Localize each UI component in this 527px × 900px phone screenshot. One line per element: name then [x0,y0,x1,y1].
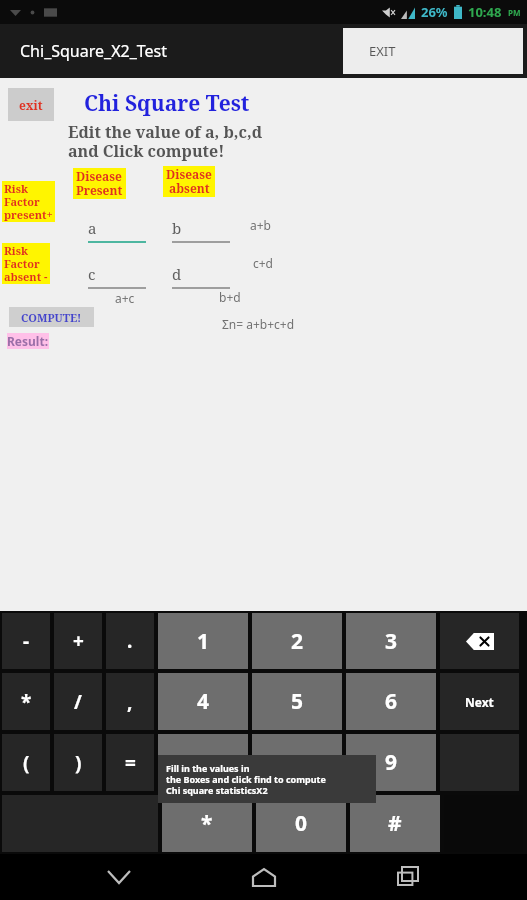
staticText: Risk Factor absent - [4,243,48,284]
staticText: Chi Square Test [84,89,250,118]
button[interactable]: 1 [158,613,248,669]
staticText: 2 [291,627,304,656]
staticText: 10:48 [468,3,502,21]
staticText: Fill in the values in the Boxes and clic… [166,762,326,796]
staticText: Disease Present [76,168,123,199]
button[interactable]: 5 [252,673,342,730]
staticText: Next [465,694,494,710]
button[interactable]: * [162,795,252,852]
button[interactable]: Next [440,673,519,730]
staticText: 9 [385,748,398,777]
staticText: = [125,750,136,776]
staticText: Edit the value of a, b,c,d and Click com… [68,121,263,162]
button[interactable]: Recents [382,854,434,900]
staticText: c [88,264,96,284]
staticText: EXIT [369,42,396,60]
staticText: * [201,809,213,838]
button[interactable]: 6 [346,673,436,730]
staticText: a+c [115,290,135,306]
staticText: Chi_Square_X2_Test [20,40,168,62]
button[interactable]: 4 [158,673,248,730]
staticText: b [172,218,182,238]
button[interactable]: 9 [346,734,436,791]
staticText: + [73,628,84,654]
button[interactable]: COMPUTE! [9,307,94,327]
button[interactable]: * [2,673,50,730]
staticText: # [388,809,402,838]
staticText: a [88,218,97,238]
staticText: Risk Factor present+ [4,181,53,222]
staticText: , [127,689,133,715]
staticText: c+d [253,255,274,271]
staticText: PM [508,7,521,18]
staticText: Disease absent [166,166,212,197]
staticText: . [127,628,133,654]
button[interactable]: . [106,613,154,669]
staticText: 26% [421,3,448,21]
staticText: COMPUTE! [21,310,82,325]
staticText: ) [75,750,82,776]
staticText: 8 [291,748,304,777]
button[interactable]: Home [238,854,290,900]
button[interactable]: b [172,218,230,243]
staticText: 3 [385,627,398,656]
button[interactable]: ) [54,734,102,791]
button[interactable]: exit [8,88,54,121]
staticText: * [21,689,32,715]
button[interactable]: ( [2,734,50,791]
button[interactable]: c [88,264,146,289]
staticText: b+d [219,289,241,305]
staticText: 5 [291,687,304,716]
button[interactable]: a [88,218,146,243]
button[interactable]: # [350,795,440,852]
button[interactable]: / [54,673,102,730]
staticText: Result: [7,333,49,349]
button[interactable]: 7 [158,734,248,791]
staticText: 0 [295,809,308,838]
staticText: / [74,689,82,715]
button[interactable]: 2 [252,613,342,669]
button[interactable]: , [106,673,154,730]
staticText: a+b [250,217,271,233]
button[interactable]: ⌫ [440,613,519,669]
button[interactable]: = [106,734,154,791]
staticText: exit [19,97,43,113]
staticText: d [172,264,182,284]
button[interactable]: + [54,613,102,669]
button[interactable]: 8 [252,734,342,791]
staticText: Σn= a+b+c+d [222,316,295,332]
button[interactable]: 3 [346,613,436,669]
button[interactable]: EXIT [343,28,523,74]
staticText: 4 [197,687,210,716]
staticText: - [23,628,30,654]
button[interactable]: - [2,613,50,669]
staticText: 1 [197,627,210,656]
staticText: 7 [197,748,210,777]
staticText: 6 [385,687,398,716]
button[interactable]: 0 [256,795,346,852]
staticText: ( [23,750,30,776]
button[interactable]: d [172,264,230,289]
button[interactable]: Hide keyboard [93,854,145,900]
